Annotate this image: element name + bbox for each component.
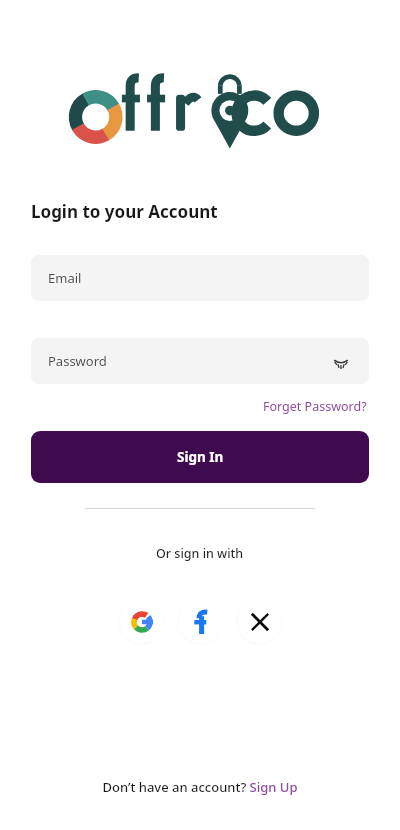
button[interactable]: Sign in with X: [235, 597, 283, 645]
button[interactable]: Password: [31, 338, 369, 384]
button[interactable]: Don’t have an account? Sign Up: [102, 778, 298, 796]
staticText: Forget Password?: [263, 398, 367, 415]
staticText: Password: [48, 352, 107, 370]
button[interactable]: Show password: [330, 350, 352, 372]
button[interactable]: Sign In: [31, 431, 369, 483]
staticText: Don’t have an account? Sign Up: [102, 778, 298, 796]
staticText: Sign In: [177, 448, 224, 466]
staticText: Email: [48, 269, 82, 287]
button[interactable]: Forget Password?: [261, 396, 369, 417]
button[interactable]: Email: [31, 255, 369, 301]
staticText: Or sign in with: [156, 545, 244, 562]
button[interactable]: Sign in with Google: [117, 597, 165, 645]
button[interactable]: Sign in with Facebook: [176, 597, 224, 645]
staticText: Login to your Account: [31, 200, 218, 223]
